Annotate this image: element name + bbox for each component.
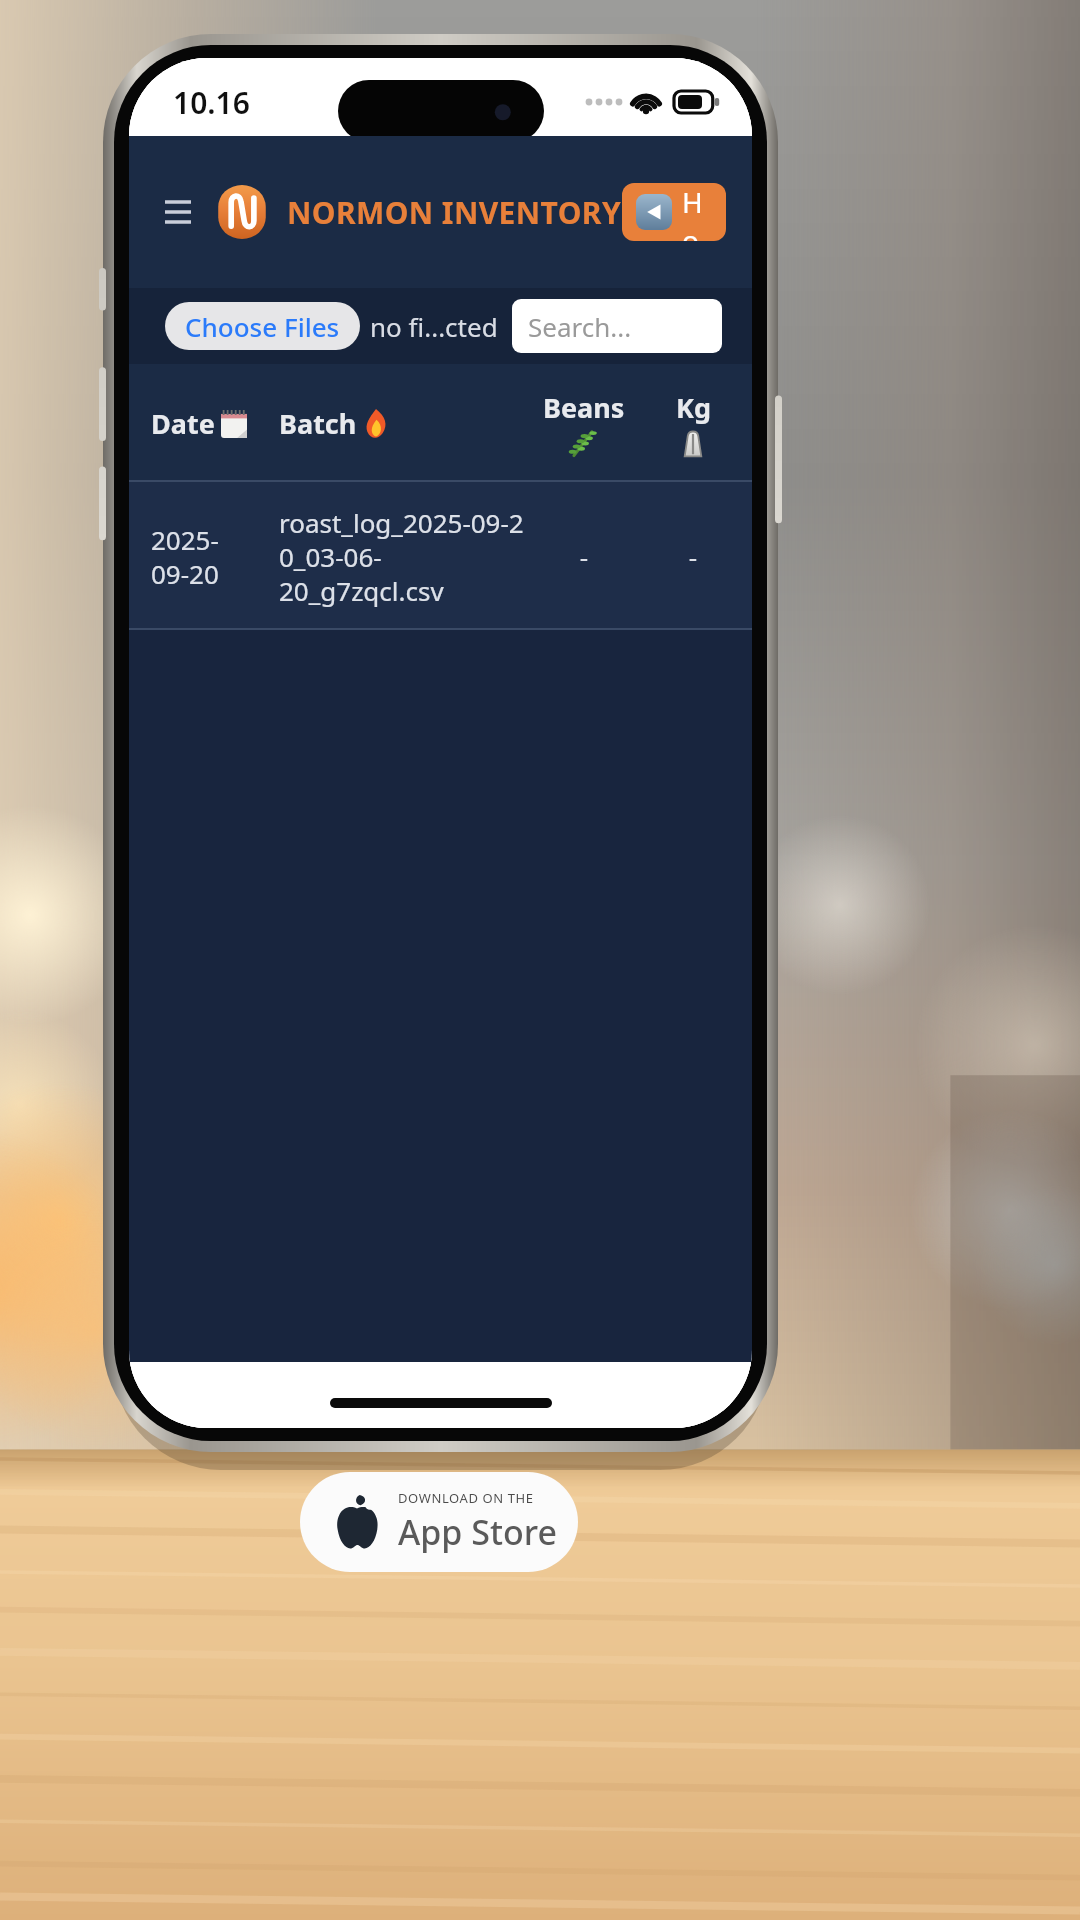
staticText: -: [656, 539, 730, 574]
staticText: NORMON INVENTORY: [287, 192, 622, 233]
staticText: Home: [682, 183, 712, 241]
button[interactable]: Menu: [155, 189, 201, 235]
staticText: no fi...cted: [370, 309, 498, 344]
staticText: DOWNLOAD ON THE: [398, 1489, 534, 1507]
button[interactable]: DOWNLOAD ON THE: [300, 1472, 578, 1572]
staticText: Search...: [528, 309, 632, 344]
staticText: roast_log_2025-09-20_03-06- 20_g7zqcl.cs…: [279, 505, 528, 608]
button[interactable]: Search...: [512, 299, 722, 353]
button[interactable]: Choose Files: [165, 302, 360, 350]
staticText: Beans: [543, 389, 625, 426]
staticText: Kg: [676, 389, 711, 426]
staticText: Batch: [279, 405, 357, 442]
staticText: 10.16: [173, 82, 250, 123]
staticText: Choose Files: [185, 309, 340, 344]
staticText: -: [528, 539, 640, 574]
button[interactable]: 2025- 09-20: [129, 482, 752, 630]
button[interactable]: Home: [622, 183, 726, 241]
staticText: 2025- 09-20: [151, 522, 279, 591]
staticText: Date: [151, 405, 215, 442]
staticText: App Store: [398, 1509, 557, 1555]
